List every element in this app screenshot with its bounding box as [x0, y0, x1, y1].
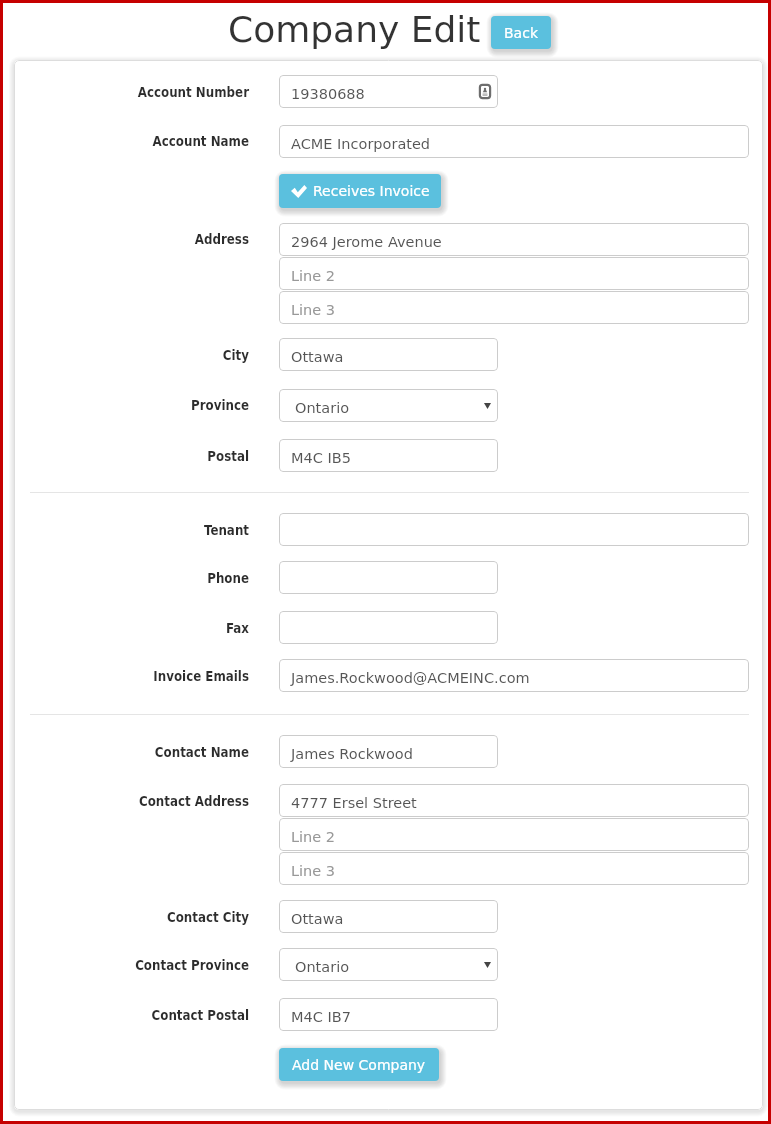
- button[interactable]: ACME Incorporated: [279, 125, 749, 158]
- button[interactable]: [279, 513, 749, 546]
- button[interactable]: James.Rockwood@ACMEINC.com: [279, 659, 749, 692]
- button[interactable]: Add New Company: [279, 1048, 439, 1081]
- staticText: 4777 Ersel Street: [291, 795, 417, 812]
- button[interactable]: Ottawa: [279, 900, 498, 933]
- button[interactable]: Line 3: [279, 291, 749, 324]
- button[interactable]: 4777 Ersel Street: [279, 784, 749, 817]
- staticText: Address: [194, 232, 249, 247]
- staticText: James Rockwood: [291, 746, 413, 763]
- staticText: Ontario: [295, 959, 350, 976]
- button[interactable]: Open dropdown: [484, 962, 491, 968]
- staticText: M4C IB7: [291, 1009, 351, 1026]
- staticText: Line 3: [291, 863, 336, 880]
- button[interactable]: Receives Invoice: [279, 174, 441, 208]
- button[interactable]: Ontario: [279, 948, 498, 981]
- staticText: Add New Company: [292, 1057, 426, 1073]
- button[interactable]: [279, 611, 498, 644]
- button[interactable]: M4C IB7: [279, 998, 498, 1031]
- staticText: Receives Invoice: [313, 183, 430, 199]
- staticText: Back: [504, 25, 538, 41]
- button[interactable]: [279, 561, 498, 594]
- staticText: Contact City: [167, 910, 249, 925]
- button[interactable]: James Rockwood: [279, 735, 498, 768]
- button[interactable]: Open dropdown: [484, 403, 491, 409]
- staticText: Fax: [226, 621, 249, 636]
- staticText: James.Rockwood@ACMEINC.com: [291, 670, 530, 687]
- staticText: Invoice Emails: [153, 669, 249, 684]
- staticText: Line 2: [291, 268, 336, 285]
- staticText: M4C IB5: [291, 450, 351, 467]
- staticText: Postal: [207, 449, 249, 464]
- button[interactable]: 19380688: [279, 75, 498, 108]
- staticText: Contact Name: [154, 745, 249, 760]
- staticText: Line 3: [291, 302, 336, 319]
- staticText: 19380688: [291, 86, 365, 103]
- button[interactable]: Ontario: [279, 389, 498, 422]
- button[interactable]: 2964 Jerome Avenue: [279, 223, 749, 256]
- button[interactable]: Account card: [479, 84, 491, 99]
- staticText: Phone: [207, 571, 249, 586]
- staticText: Company Edit: [228, 9, 481, 51]
- staticText: Contact Province: [135, 958, 249, 973]
- staticText: Line 2: [291, 829, 336, 846]
- staticText: Ontario: [295, 400, 350, 417]
- button[interactable]: Back: [491, 16, 551, 49]
- staticText: ACME Incorporated: [291, 136, 431, 153]
- button[interactable]: Ottawa: [279, 338, 498, 371]
- staticText: Account Name: [152, 134, 249, 149]
- staticText: Ottawa: [291, 911, 344, 928]
- staticText: City: [222, 348, 249, 363]
- staticText: Province: [190, 398, 249, 413]
- staticText: Account Number: [137, 85, 249, 100]
- staticText: Contact Postal: [151, 1008, 249, 1023]
- button[interactable]: Line 2: [279, 818, 749, 851]
- staticText: Contact Address: [138, 794, 249, 809]
- staticText: Ottawa: [291, 349, 344, 366]
- button[interactable]: Line 3: [279, 852, 749, 885]
- staticText: 2964 Jerome Avenue: [291, 234, 442, 251]
- button[interactable]: Line 2: [279, 257, 749, 290]
- button[interactable]: M4C IB5: [279, 439, 498, 472]
- staticText: Tenant: [204, 523, 249, 538]
